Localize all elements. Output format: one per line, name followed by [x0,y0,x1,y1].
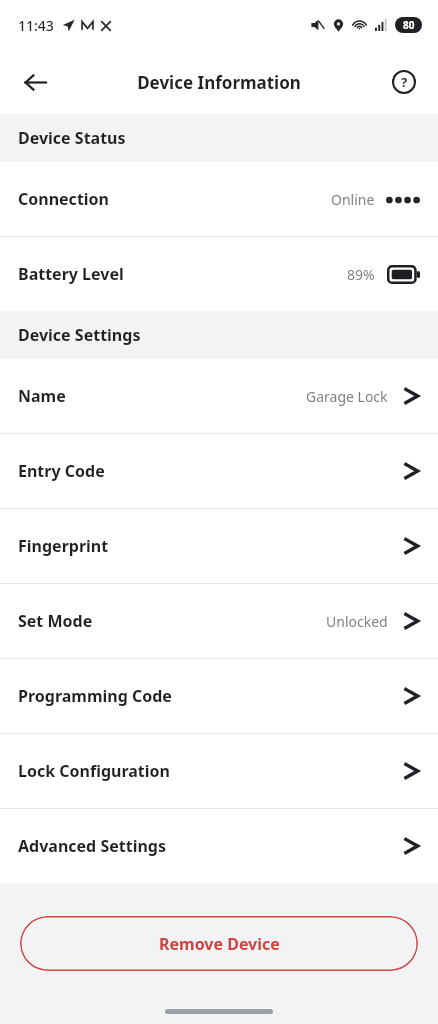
staticText: 80 [403,18,415,32]
staticText: ? [401,73,408,91]
button[interactable]: Name [0,359,438,433]
button[interactable]: Battery Level [0,237,438,311]
staticText: Advanced Settings [18,835,166,857]
button[interactable]: Help [382,60,426,104]
button[interactable]: Programming Code [0,659,438,733]
staticText: Entry Code [18,460,105,482]
button[interactable]: Remove Device [20,916,418,971]
button[interactable]: Advanced Settings [0,809,438,883]
button[interactable]: Back [12,59,58,105]
staticText: Connection [18,188,110,210]
staticText: Device Information [0,71,438,94]
button[interactable]: Connection [0,162,438,236]
staticText: Programming Code [18,685,172,707]
staticText: Garage Lock [306,387,388,406]
staticText: Online [331,190,375,209]
staticText: Lock Configuration [18,760,170,782]
staticText: Set Mode [18,610,93,632]
staticText: Battery Level [18,263,124,285]
button[interactable]: Entry Code [0,434,438,508]
staticText: 11:43 [18,16,54,35]
button[interactable]: Fingerprint [0,509,438,583]
staticText: 89% [347,265,375,284]
staticText: Device Settings [18,324,141,346]
staticText: Name [18,385,66,407]
staticText: Fingerprint [18,535,109,557]
button[interactable]: Set Mode [0,584,438,658]
staticText: Remove Device [159,933,280,955]
staticText: Unlocked [326,612,388,631]
staticText: Device Status [18,127,126,149]
button[interactable]: Lock Configuration [0,734,438,808]
